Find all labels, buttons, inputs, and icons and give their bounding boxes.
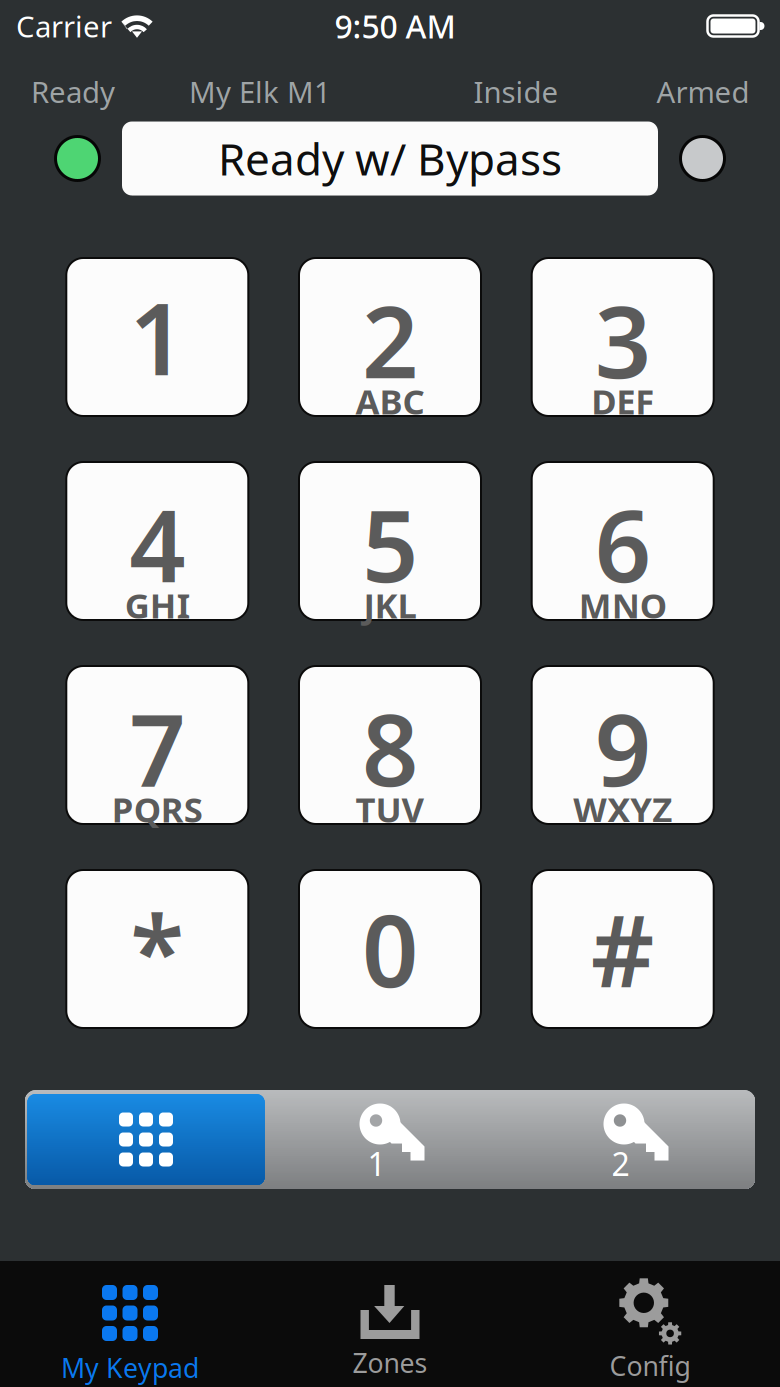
staticText: 7: [129, 682, 185, 813]
button[interactable]: 9: [531, 665, 715, 825]
staticText: MNO: [579, 582, 667, 628]
staticText: My Elk M1: [189, 72, 331, 111]
button[interactable]: 7: [65, 665, 249, 825]
staticText: 9: [595, 682, 651, 813]
staticText: JKL: [363, 582, 416, 628]
staticText: Ready: [31, 72, 115, 111]
staticText: WXYZ: [573, 786, 672, 832]
button[interactable]: Config: [520, 1261, 780, 1387]
staticText: 1: [367, 1142, 385, 1185]
button[interactable]: 6: [531, 461, 715, 621]
button[interactable]: 4: [65, 461, 249, 621]
staticText: 2: [362, 274, 418, 405]
staticText: 6: [595, 478, 651, 609]
staticText: 8: [362, 682, 418, 813]
button[interactable]: My Keypad: [0, 1261, 260, 1387]
button[interactable]: 8: [298, 665, 482, 825]
staticText: *: [130, 883, 184, 1014]
staticText: Armed: [656, 72, 749, 111]
staticText: 1: [129, 271, 185, 402]
staticText: TUV: [355, 786, 424, 832]
staticText: My Keypad: [61, 1350, 199, 1385]
staticText: ABC: [355, 378, 424, 424]
button[interactable]: Key 1: [272, 1094, 508, 1185]
button[interactable]: Zones: [260, 1261, 520, 1387]
staticText: Carrier: [16, 6, 112, 45]
button[interactable]: 0: [298, 869, 482, 1029]
button[interactable]: 1: [65, 257, 249, 417]
staticText: Config: [609, 1348, 690, 1383]
button[interactable]: Keypad: [27, 1094, 264, 1185]
button[interactable]: #: [531, 869, 715, 1029]
staticText: GHI: [125, 582, 190, 628]
staticText: #: [591, 883, 655, 1014]
staticText: 9:50 AM: [334, 5, 455, 47]
staticText: Ready w/ Bypass: [218, 129, 562, 188]
button[interactable]: *: [65, 869, 249, 1029]
staticText: PQRS: [112, 786, 203, 832]
staticText: DEF: [591, 378, 654, 424]
button[interactable]: Ready w/ Bypass: [122, 121, 658, 195]
staticText: 0: [362, 883, 418, 1014]
staticText: Zones: [352, 1345, 427, 1380]
staticText: 5: [362, 478, 418, 609]
button[interactable]: 3: [531, 257, 715, 417]
button[interactable]: 5: [298, 461, 482, 621]
staticText: 2: [611, 1142, 629, 1185]
staticText: Inside: [473, 72, 558, 111]
button[interactable]: Key 2: [516, 1094, 752, 1185]
staticText: 3: [595, 274, 651, 405]
button[interactable]: 2: [298, 257, 482, 417]
staticText: 4: [129, 478, 185, 609]
